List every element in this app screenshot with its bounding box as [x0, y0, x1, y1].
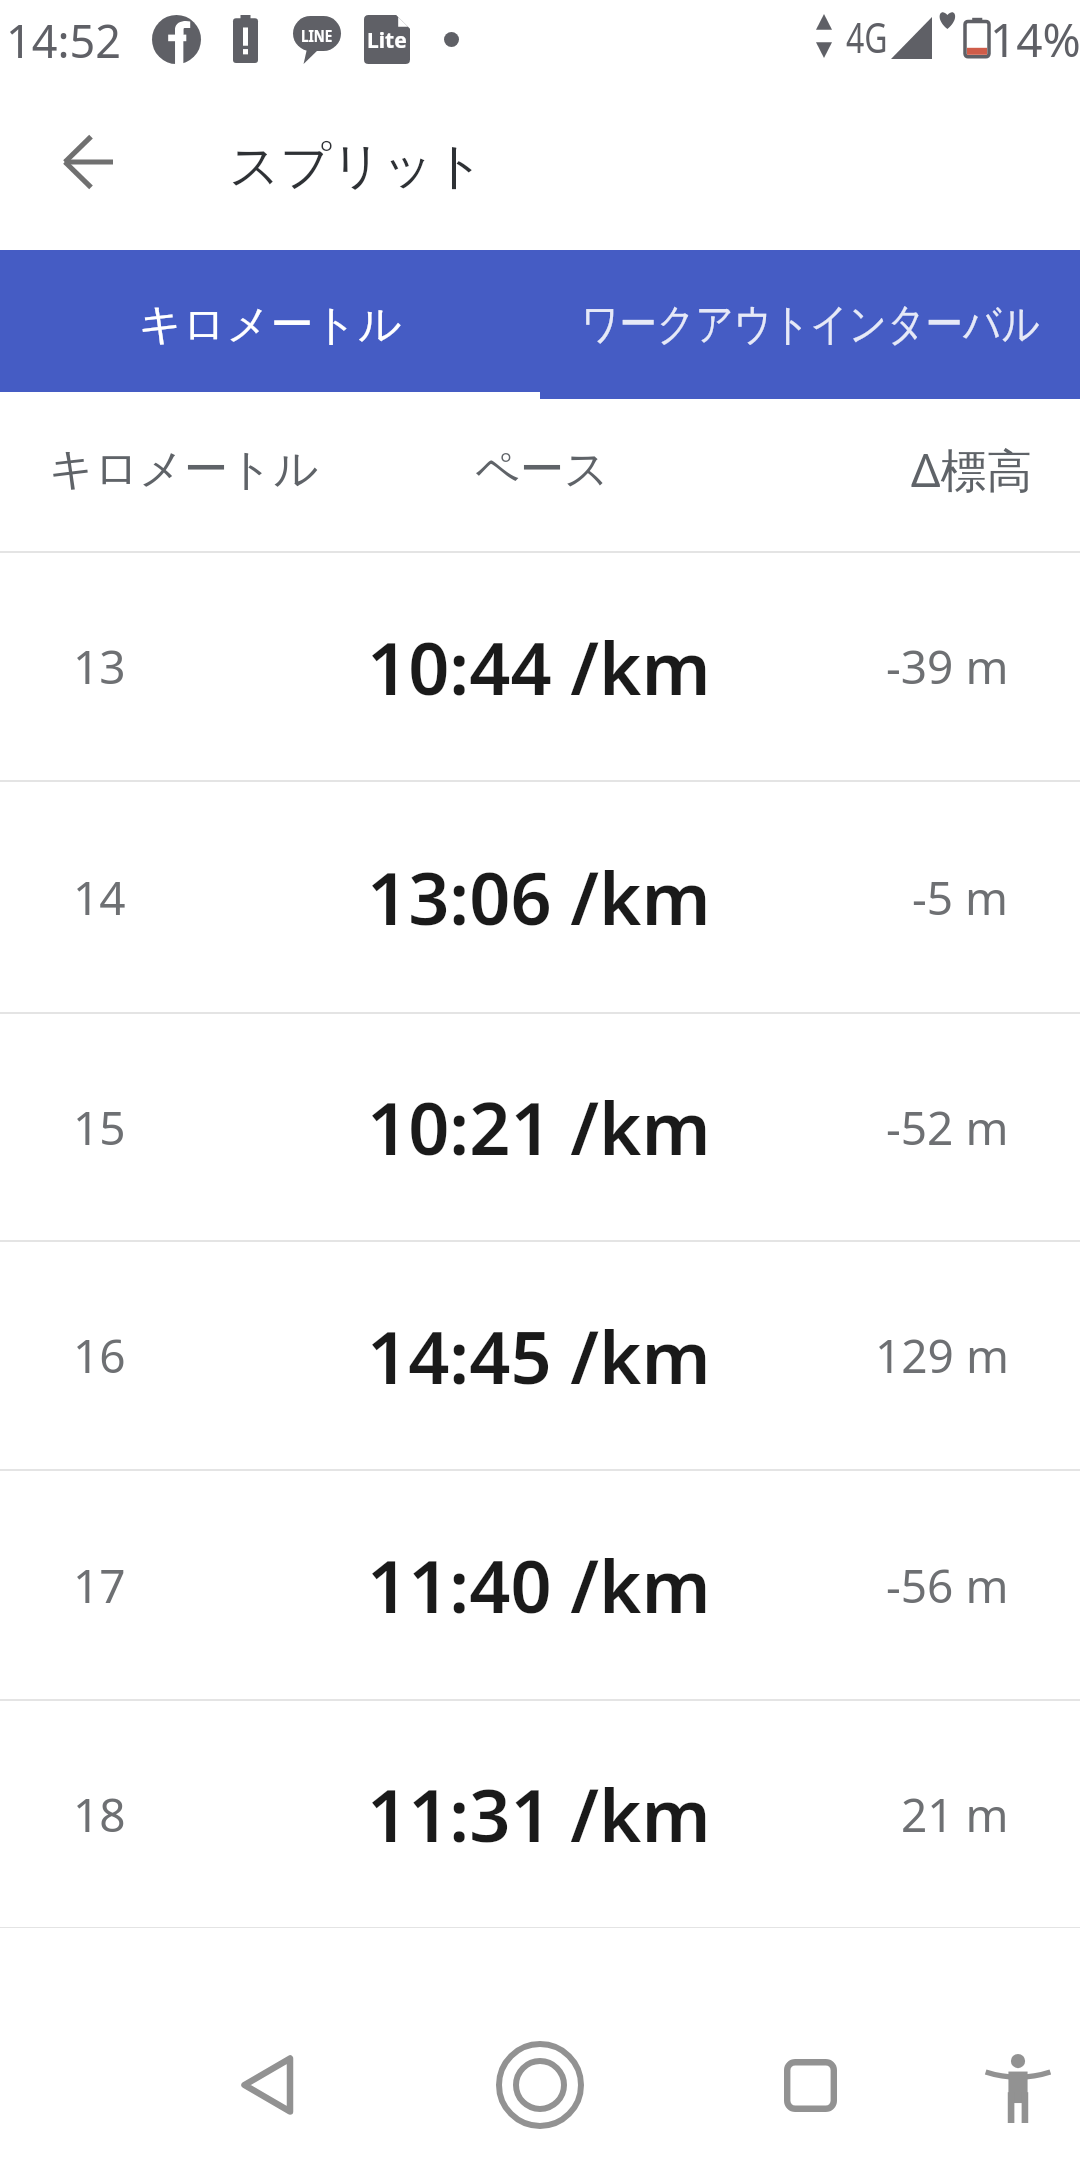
button[interactable]: 18 [0, 1701, 1080, 1927]
staticText: 10:44 /km [367, 618, 711, 716]
staticText: 14% [990, 8, 1080, 71]
button[interactable]: 17 [0, 1471, 1080, 1699]
button[interactable]: Home [470, 2015, 610, 2155]
staticText: 14 [73, 866, 126, 929]
button[interactable]: 13 [0, 553, 1080, 780]
staticText: スプリット [229, 135, 485, 198]
button[interactable]: 16 [0, 1242, 1080, 1469]
button[interactable]: Back [197, 2015, 337, 2155]
staticText: 15 [73, 1096, 126, 1159]
staticText: 21 m [901, 1783, 1009, 1846]
staticText: 10:21 /km [367, 1078, 711, 1176]
staticText: ワークアウトインターバル [581, 297, 1040, 352]
staticText: ペース [475, 442, 610, 497]
staticText: 13 [73, 635, 126, 698]
button[interactable]: Recent apps [740, 2015, 880, 2155]
button[interactable]: キロメートル [0, 250, 540, 399]
button[interactable]: Accessibility [953, 2023, 1080, 2153]
staticText: 11:40 /km [367, 1536, 711, 1634]
staticText: -39 m [886, 635, 1009, 698]
button[interactable]: Back [16, 90, 160, 234]
staticText: 4G [846, 9, 888, 65]
button[interactable]: ワークアウトインターバル [540, 250, 1080, 399]
staticText: Lite [367, 26, 407, 55]
staticText: 17 [73, 1554, 126, 1617]
staticText: 18 [73, 1783, 126, 1846]
staticText: LINE [301, 25, 333, 47]
staticText: -56 m [886, 1554, 1009, 1617]
button[interactable]: 15 [0, 1014, 1080, 1240]
staticText: 13:06 /km [367, 848, 711, 946]
button[interactable]: 14 [0, 782, 1080, 1012]
staticText: -52 m [886, 1096, 1009, 1159]
staticText: 14:45 /km [367, 1307, 711, 1405]
staticText: 16 [73, 1324, 126, 1387]
staticText: Δ標高 [911, 438, 1033, 501]
staticText: 11:31 /km [367, 1765, 711, 1863]
staticText: 129 m [875, 1324, 1009, 1387]
staticText: 14:52 [6, 10, 122, 71]
staticText: キロメートル [138, 298, 402, 352]
staticText: -5 m [912, 866, 1009, 929]
staticText: キロメートル [49, 442, 319, 497]
